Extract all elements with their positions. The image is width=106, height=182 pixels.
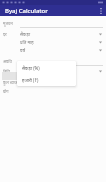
staticText: वर्ष <box>20 47 98 53</box>
staticText: कुल ब्याज <box>3 80 18 85</box>
button[interactable]: हजारी (₹) <box>17 74 76 86</box>
button[interactable]: तिथि <box>3 67 103 75</box>
button[interactable]: प्रति माह <box>3 38 103 46</box>
staticText: सैकड़ा (%) <box>22 65 40 71</box>
staticText: प्रति माह <box>20 39 98 45</box>
staticText: मूलधन <box>3 21 20 26</box>
staticText: हजारी (₹) <box>22 77 39 83</box>
staticText: तिथि <box>3 69 20 74</box>
staticText: योग <box>3 89 9 94</box>
button[interactable]: दर <box>3 30 103 38</box>
button[interactable]: सैकड़ा (%) <box>17 61 76 74</box>
staticText: Byaj Calculator <box>5 7 48 15</box>
button[interactable]: More options <box>95 5 106 16</box>
staticText: दर <box>3 32 20 37</box>
staticText <box>20 68 98 74</box>
staticText: सैकड़ा <box>20 31 98 37</box>
button[interactable]: वर्ष <box>3 46 103 54</box>
staticText: अवधि <box>3 59 20 64</box>
